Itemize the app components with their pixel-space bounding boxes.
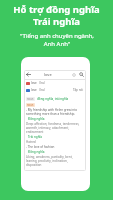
staticText: Trái nghĩa [28, 135, 42, 139]
button[interactable]: Tập nói [73, 88, 84, 92]
button[interactable]: Đồng nghĩa [28, 117, 45, 121]
staticText: Deep affection, fondness, tenderness, wa… [26, 122, 80, 134]
button[interactable]: Back [26, 72, 31, 77]
staticText: noun [27, 97, 34, 101]
staticText: - My friendship with Helen grew into som… [26, 108, 78, 116]
staticText: Hỗ trợ đồng nghĩa Trái nghĩa [13, 3, 100, 27]
staticText: đồng nghĩa, trái nghĩa [37, 97, 69, 101]
staticText: love [44, 72, 52, 77]
button[interactable]: Clear [72, 73, 76, 77]
staticText: Hatred [26, 140, 36, 144]
staticText: Liking, weakness, partiality, bent, lean… [26, 155, 73, 167]
staticText: Tập nói [73, 88, 84, 92]
button[interactable]: love [26, 88, 84, 92]
staticText: love [31, 88, 37, 92]
staticText: - The love of fashion [26, 145, 55, 149]
button[interactable]: love [26, 81, 84, 85]
button[interactable]: Search [79, 72, 84, 77]
staticText: /lʌv/ [39, 81, 46, 85]
button[interactable]: Trái nghĩa [28, 135, 42, 139]
button[interactable]: Đồng nghĩa [28, 150, 45, 154]
staticText: Đồng nghĩa [28, 117, 45, 121]
staticText: "Tiếng anh chuyên ngành, Anh Anh" [20, 32, 94, 48]
staticText: Đồng nghĩa [28, 150, 45, 154]
staticText: love [31, 81, 37, 85]
staticText: /lʌv/ [39, 88, 46, 92]
staticText: noun [27, 103, 34, 107]
